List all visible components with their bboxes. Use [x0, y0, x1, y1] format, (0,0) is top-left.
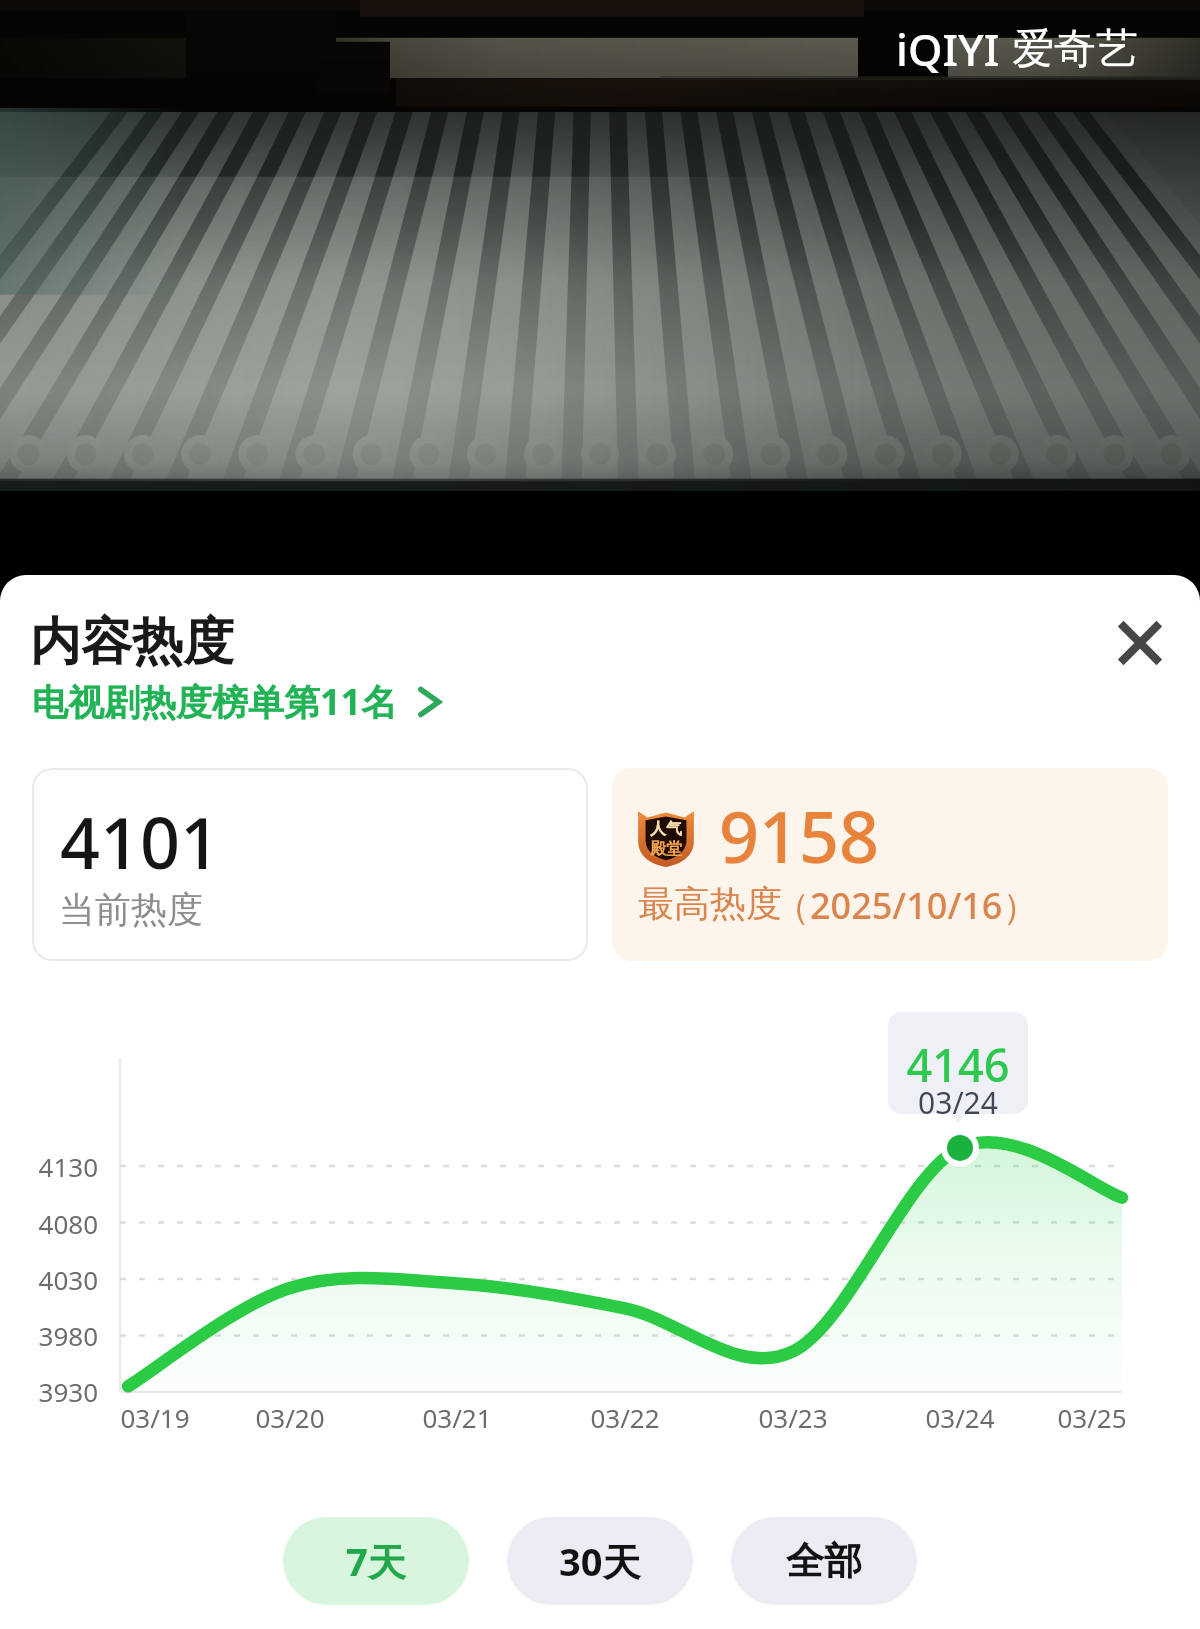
button[interactable]: 人气 [612, 768, 1168, 961]
button[interactable]: 30天 [507, 1517, 693, 1605]
button[interactable]: 全部 [731, 1517, 917, 1605]
button[interactable]: 电视剧热度榜单第11名 [32, 677, 446, 726]
staticText: 30天 [559, 1535, 641, 1587]
staticText: 4130 [18, 1149, 98, 1184]
staticText: 4080 [18, 1206, 98, 1241]
button[interactable]: 7天 [283, 1517, 469, 1605]
staticText: 03/25 [1030, 1400, 1154, 1435]
staticText: 03/20 [228, 1400, 352, 1435]
staticText: 03/24 [898, 1400, 1022, 1435]
staticText: iQIYI [896, 19, 1000, 79]
staticText: 03/19 [93, 1400, 217, 1435]
staticText: 人气 [650, 819, 682, 839]
staticText: 4101 [60, 794, 221, 889]
button[interactable]: 4101 [32, 768, 588, 961]
staticText: 4030 [18, 1262, 98, 1297]
staticText: 9158 [719, 788, 880, 883]
staticText: 03/21 [395, 1400, 519, 1435]
staticText: 最高热度 [638, 881, 782, 926]
staticText: 殿堂 [650, 839, 682, 859]
staticText: （2025/10/16） [774, 881, 1039, 930]
staticText: 03/24 [888, 1082, 1028, 1114]
staticText: 3930 [18, 1374, 98, 1409]
button[interactable]: Close [1102, 605, 1178, 681]
staticText: 爱奇艺 [1012, 23, 1138, 76]
staticText: 电视剧热度榜单第11名 [32, 677, 398, 726]
staticText: 内容热度 [30, 610, 234, 674]
staticText: 4146 [888, 1034, 1028, 1095]
staticText: 03/22 [563, 1400, 687, 1435]
staticText: 3980 [18, 1318, 98, 1353]
staticText: 03/23 [731, 1400, 855, 1435]
staticText: 当前热度 [59, 887, 203, 932]
staticText: 7天 [346, 1535, 406, 1587]
staticText: 全部 [786, 1537, 862, 1585]
